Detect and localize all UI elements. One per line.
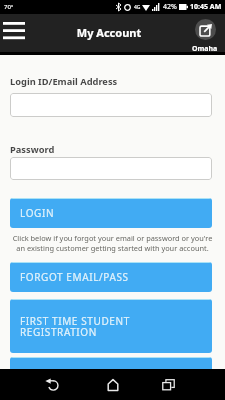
button[interactable]	[10, 357, 212, 377]
button[interactable]	[90, 369, 135, 400]
staticText: FORGOT EMAIL/PASS	[20, 270, 129, 284]
staticText: My Account	[0, 25, 218, 40]
button[interactable]: FORGOT EMAIL/PASS	[10, 262, 212, 292]
button[interactable]	[30, 369, 75, 400]
staticText: Login ID/Email Address	[10, 75, 118, 88]
staticText: 10:45 AM	[190, 2, 222, 12]
button[interactable]: Omaha	[192, 19, 218, 54]
staticText: Click below if you forgot your email or …	[0, 233, 225, 253]
staticText: LOGIN	[20, 206, 55, 220]
button[interactable]: LOGIN	[10, 198, 212, 228]
button[interactable]	[10, 93, 212, 117]
staticText: Omaha	[192, 44, 218, 54]
staticText: 70°	[4, 3, 14, 11]
staticText: Password	[10, 143, 55, 156]
staticText: 42%	[163, 2, 177, 12]
button[interactable]	[146, 369, 191, 400]
button[interactable]	[0, 14, 40, 52]
staticText: FIRST TIME STUDENT REGISTRATION	[20, 314, 130, 339]
button[interactable]: FIRST TIME STUDENT REGISTRATION	[10, 299, 212, 353]
button[interactable]	[10, 157, 212, 180]
staticText: 4G	[134, 4, 141, 11]
